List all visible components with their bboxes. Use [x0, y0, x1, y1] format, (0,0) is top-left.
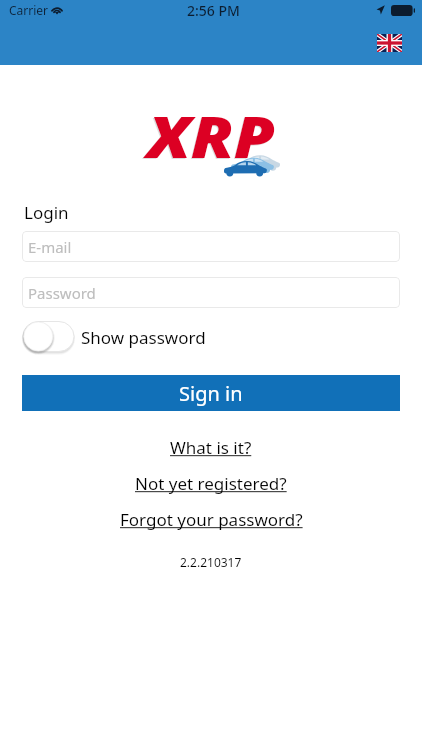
staticText: 2.2.210317: [180, 554, 242, 570]
button[interactable]: What is it?: [170, 436, 252, 459]
staticText: 2:56 PM: [187, 1, 240, 20]
button[interactable]: Forgot your password?: [120, 508, 303, 531]
button[interactable]: Change language: [377, 34, 402, 52]
staticText: Carrier: [9, 2, 49, 18]
button[interactable]: Sign in: [22, 375, 400, 411]
staticText: Password: [28, 283, 96, 303]
staticText: E-mail: [28, 237, 72, 257]
staticText: XRP: [146, 98, 275, 176]
button[interactable]: Show password: [23, 320, 206, 354]
button[interactable]: Password: [22, 277, 400, 308]
button[interactable]: E-mail: [22, 231, 400, 262]
staticText: Show password: [81, 326, 206, 349]
staticText: Sign in: [179, 380, 243, 407]
staticText: Login: [24, 201, 69, 224]
button[interactable]: Not yet registered?: [135, 472, 287, 495]
staticText: XRP: [147, 97, 276, 175]
